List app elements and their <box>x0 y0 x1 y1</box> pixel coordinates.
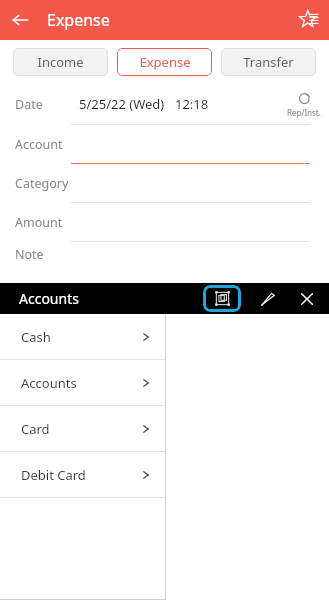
button[interactable]: Close <box>294 286 320 312</box>
staticText: Amount <box>15 214 63 231</box>
button[interactable]: Note <box>0 242 329 282</box>
staticText: Accounts <box>21 374 77 392</box>
staticText: Debit Card <box>21 466 86 484</box>
staticText: 5/25/22 (Wed) <box>79 95 165 113</box>
staticText: Rep/Inst. <box>287 107 321 118</box>
button[interactable]: Amount <box>0 203 329 241</box>
button[interactable]: Back <box>0 0 40 40</box>
staticText: Accounts <box>19 289 79 308</box>
button[interactable]: Edit <box>255 286 281 312</box>
button[interactable]: Expense <box>117 48 212 76</box>
button[interactable]: Debit Card <box>0 452 165 498</box>
button[interactable]: Account <box>0 125 329 163</box>
button[interactable]: Repeat or Installment <box>287 91 321 118</box>
button[interactable]: Favorites <box>289 0 329 40</box>
button[interactable]: Cash <box>0 314 165 360</box>
staticText: Account <box>15 136 63 153</box>
staticText: Card <box>21 420 50 438</box>
button[interactable]: Date <box>0 84 329 124</box>
button[interactable]: Card <box>0 406 165 452</box>
button[interactable]: Category <box>0 164 329 202</box>
staticText: Expense <box>139 53 191 71</box>
button[interactable]: Select <box>203 285 241 312</box>
button[interactable]: Transfer <box>221 48 316 76</box>
staticText: Transfer <box>243 53 294 71</box>
staticText: 12:18 <box>175 95 209 113</box>
staticText: Income <box>37 53 84 71</box>
staticText: Expense <box>47 9 110 31</box>
staticText: Note <box>15 246 44 263</box>
button[interactable]: Accounts <box>0 360 165 406</box>
staticText: Category <box>15 175 69 192</box>
staticText: Cash <box>21 328 51 346</box>
staticText: Date <box>15 96 43 113</box>
button[interactable]: Income <box>13 48 108 76</box>
